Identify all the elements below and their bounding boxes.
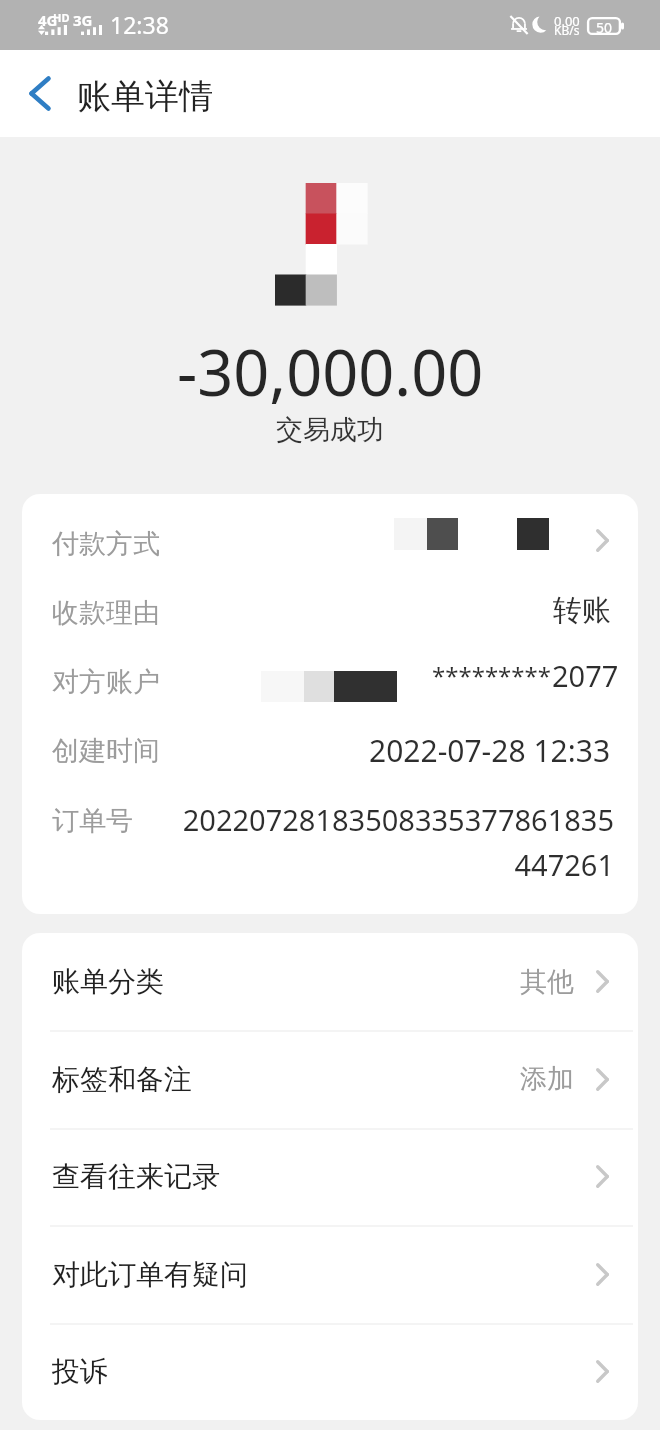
- button[interactable]: 对此订单有疑问: [22, 1225, 638, 1323]
- staticText: 2022-07-28 12:33: [369, 730, 611, 771]
- staticText: -30,000.00: [177, 329, 484, 415]
- staticText: 对此订单有疑问: [52, 1257, 248, 1292]
- staticText: 12:38: [110, 9, 169, 40]
- staticText: 账单详情: [77, 75, 213, 118]
- staticText: *********: [432, 659, 552, 692]
- staticText: 添加: [520, 1062, 574, 1096]
- staticText: 订单号: [52, 804, 133, 838]
- staticText: HD: [53, 10, 70, 25]
- staticText: KB/s: [554, 22, 580, 38]
- staticText: 50: [596, 18, 613, 36]
- button[interactable]: 查看往来记录: [22, 1128, 638, 1225]
- button[interactable]: 付款方式: [22, 494, 638, 573]
- staticText: 收款理由: [52, 596, 160, 630]
- staticText: 交易成功: [276, 413, 384, 447]
- staticText: 账单分类: [52, 964, 164, 999]
- button[interactable]: 账单分类: [22, 933, 638, 1030]
- staticText: 转账: [553, 592, 611, 629]
- staticText: 20220728183508335377861835447261: [177, 800, 614, 885]
- staticText: 创建时间: [52, 734, 160, 768]
- staticText: 2077: [552, 656, 619, 695]
- staticText: 标签和备注: [52, 1062, 192, 1097]
- button[interactable]: Back: [6, 50, 74, 137]
- staticText: 投诉: [52, 1354, 108, 1389]
- button[interactable]: 标签和备注: [22, 1030, 638, 1128]
- staticText: 付款方式: [52, 527, 160, 561]
- button[interactable]: 投诉: [22, 1323, 638, 1420]
- staticText: 查看往来记录: [52, 1159, 220, 1194]
- staticText: 3G: [73, 10, 93, 30]
- staticText: 4G: [38, 10, 58, 30]
- staticText: 0.00: [554, 12, 580, 30]
- staticText: 对方账户: [52, 665, 160, 699]
- staticText: 其他: [520, 965, 574, 999]
